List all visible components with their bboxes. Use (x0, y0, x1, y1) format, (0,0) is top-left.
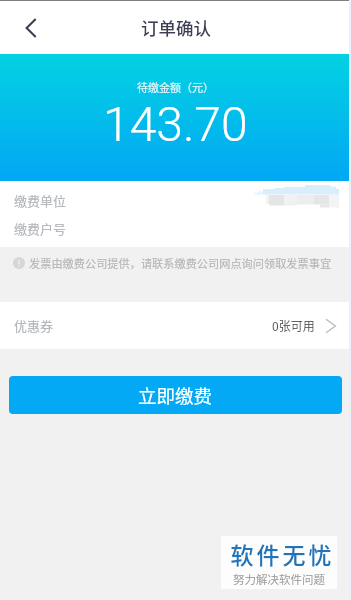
staticText: 订单确认 (141, 15, 211, 40)
staticText: 软件无忧 (229, 537, 333, 570)
staticText: 努力解决软件问题 (233, 571, 325, 588)
staticText: 立即缴费 (138, 382, 213, 409)
staticText: 待缴金额（元） (137, 79, 214, 95)
staticText: 缴费单位 (14, 191, 67, 210)
staticText: 优惠券 (14, 316, 54, 335)
staticText: 143.70 (103, 96, 248, 152)
staticText: 0张可用 (272, 317, 315, 334)
staticText: 发票由缴费公司提供，请联系缴费公司网点询问领取发票事宜 (29, 255, 332, 271)
staticText: 缴费户号 (14, 219, 67, 238)
button[interactable]: 立即缴费 (9, 376, 342, 414)
button[interactable]: Back (8, 5, 54, 51)
button[interactable]: 优惠券 (0, 302, 351, 349)
